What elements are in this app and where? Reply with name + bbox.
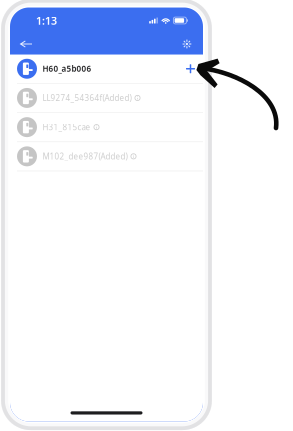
- button[interactable]: LL9274_54364f(Added): [10, 84, 203, 113]
- staticText: M102_dee987(Added): [42, 151, 127, 162]
- staticText: 1:13: [36, 13, 57, 28]
- button[interactable]: H31_815cae: [10, 113, 203, 142]
- button[interactable]: Back: [15, 34, 37, 54]
- button[interactable]: H60_a5b006: [10, 54, 203, 84]
- staticText: H31_815cae: [42, 122, 90, 132]
- staticText: LL9274_54364f(Added): [42, 93, 131, 103]
- button[interactable]: M102_dee987(Added): [10, 142, 203, 171]
- button[interactable]: Brightness: [177, 34, 196, 54]
- staticText: H60_a5b006: [42, 63, 91, 74]
